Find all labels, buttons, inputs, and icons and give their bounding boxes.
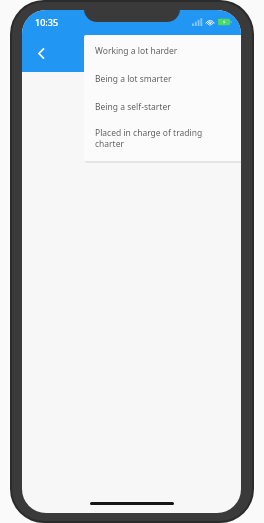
button[interactable]: Being a self-starter [84, 93, 241, 121]
staticText: Working a lot harder [95, 45, 178, 57]
button[interactable]: Being a lot smarter [84, 65, 241, 93]
staticText: Being a self-starter [95, 101, 171, 113]
button[interactable]: Back [26, 38, 56, 68]
staticText: 10:35 [35, 16, 59, 28]
button[interactable]: Working a lot harder [84, 37, 241, 65]
button[interactable]: Placed in charge of trading charter [84, 121, 241, 155]
staticText: Being a lot smarter [95, 73, 172, 85]
staticText: Points [110, 45, 146, 61]
staticText: Placed in charge of trading charter [95, 127, 233, 149]
